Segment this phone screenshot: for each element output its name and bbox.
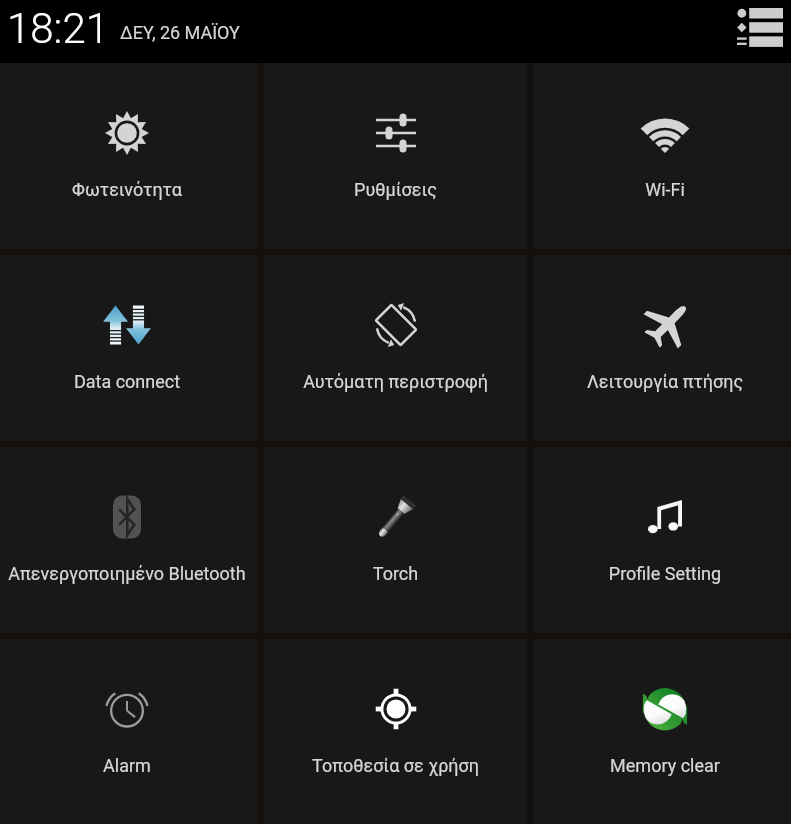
button[interactable]: Αυτόματη περιστροφή — [264, 255, 527, 441]
button[interactable]: Απενεργοποιημένο Bluetooth — [0, 447, 258, 633]
staticText: Φωτεινότητα — [0, 179, 256, 200]
staticText: Τοποθεσία σε χρήση — [264, 755, 527, 776]
button[interactable]: Alarm — [0, 639, 258, 824]
button[interactable]: Τοποθεσία σε χρήση — [264, 639, 527, 824]
button[interactable]: Memory clear — [533, 639, 791, 824]
button[interactable]: Ρυθμίσεις — [264, 63, 527, 249]
staticText: Alarm — [0, 755, 256, 776]
staticText: ΔΕΥ, 26 ΜΑΪΟΥ — [120, 22, 240, 43]
staticText: Λειτουργία πτήσης — [536, 371, 791, 392]
staticText: Αυτόματη περιστροφή — [264, 371, 527, 392]
staticText: Profile Setting — [536, 563, 791, 584]
staticText: Απενεργοποιημένο Bluetooth — [0, 563, 256, 584]
staticText: 18:21 — [7, 4, 110, 53]
staticText: Memory clear — [536, 755, 791, 776]
button[interactable]: Profile Setting — [533, 447, 791, 633]
staticText: Data connect — [0, 371, 256, 392]
button[interactable]: Torch — [264, 447, 527, 633]
staticText: Wi-Fi — [536, 179, 791, 200]
button[interactable]: Quick settings list — [732, 1, 788, 57]
button[interactable]: Φωτεινότητα — [0, 63, 258, 249]
button[interactable]: Wi-Fi — [533, 63, 791, 249]
staticText: Ρυθμίσεις — [264, 179, 527, 200]
button[interactable]: Data connect — [0, 255, 258, 441]
staticText: Torch — [264, 563, 527, 584]
button[interactable]: Λειτουργία πτήσης — [533, 255, 791, 441]
